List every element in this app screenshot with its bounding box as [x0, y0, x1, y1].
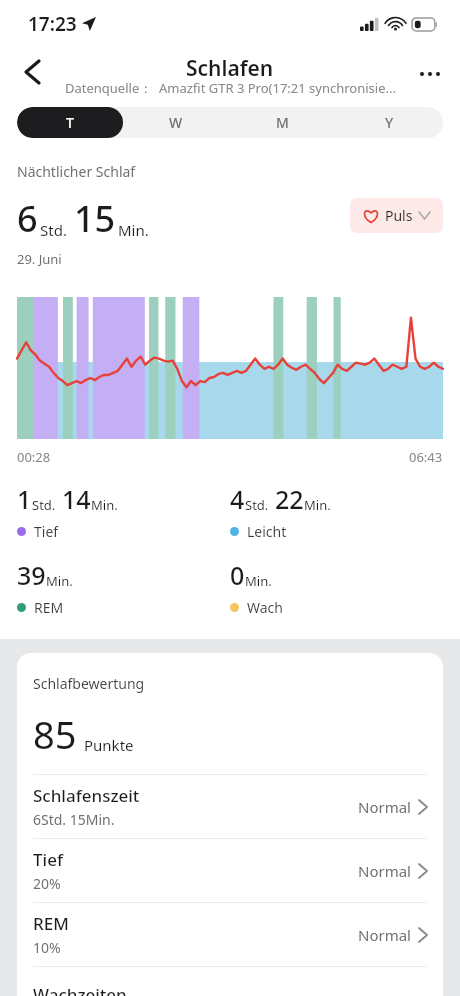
staticText: 20% — [33, 874, 61, 893]
button[interactable]: Back — [10, 50, 54, 94]
staticText: Min. — [46, 572, 73, 590]
staticText: W — [169, 113, 183, 132]
staticText: 39 — [17, 558, 46, 592]
staticText: Schlafen — [186, 54, 274, 83]
staticText: REM — [34, 598, 64, 617]
staticText: Normal — [358, 925, 411, 945]
button[interactable]: REM — [33, 903, 427, 966]
staticText: Nächtlicher Schlaf — [17, 162, 136, 181]
staticText: 10% — [33, 938, 61, 957]
button[interactable]: Y — [336, 107, 443, 138]
button[interactable]: Schlafenszeit — [33, 775, 427, 838]
staticText: Std. — [40, 220, 67, 240]
staticText: 00:28 — [17, 448, 51, 466]
staticText: 1 — [17, 482, 32, 516]
staticText: Punkte — [84, 735, 134, 755]
staticText: Min. — [245, 572, 272, 590]
staticText: 14 — [62, 482, 91, 516]
staticText: 06:43 — [409, 448, 443, 466]
staticText: Wach — [247, 598, 283, 617]
button[interactable]: M — [229, 107, 336, 138]
staticText: Schlafenszeit — [33, 784, 140, 807]
button[interactable]: Puls — [350, 198, 443, 233]
staticText: 0 — [230, 558, 245, 592]
staticText: T — [66, 113, 74, 132]
button[interactable]: T — [17, 107, 123, 138]
staticText: Tief — [33, 848, 63, 871]
staticText: Std. — [245, 496, 269, 514]
staticText: Puls — [385, 206, 413, 225]
staticText: Datenquelle： Amazfit GTR 3 Pro(17:21 syn… — [65, 79, 396, 97]
staticText: 22 — [275, 482, 304, 516]
staticText: Min. — [304, 496, 331, 514]
staticText: 15 — [74, 194, 116, 243]
staticText: Std. — [32, 496, 56, 514]
button[interactable]: W — [123, 107, 229, 138]
button[interactable]: More options — [408, 52, 452, 96]
staticText: M — [276, 113, 289, 132]
staticText: 17:23 — [28, 11, 77, 37]
staticText: Min. — [91, 496, 118, 514]
staticText: Leicht — [247, 522, 287, 541]
staticText: Tief — [34, 522, 59, 541]
staticText: 6 — [17, 194, 38, 243]
staticText: 85 — [33, 708, 77, 760]
staticText: Normal — [358, 797, 411, 817]
staticText: Min. — [118, 220, 149, 240]
staticText: REM — [33, 912, 69, 935]
staticText: Wachzeiten — [33, 983, 127, 996]
staticText: 29. Juni — [17, 250, 62, 268]
staticText: Y — [385, 113, 394, 132]
staticText: 6Std. 15Min. — [33, 810, 115, 829]
staticText: Normal — [358, 861, 411, 881]
staticText: Schlafbewertung — [33, 674, 145, 693]
staticText: 4 — [230, 482, 245, 516]
button[interactable]: Tief — [33, 839, 427, 902]
